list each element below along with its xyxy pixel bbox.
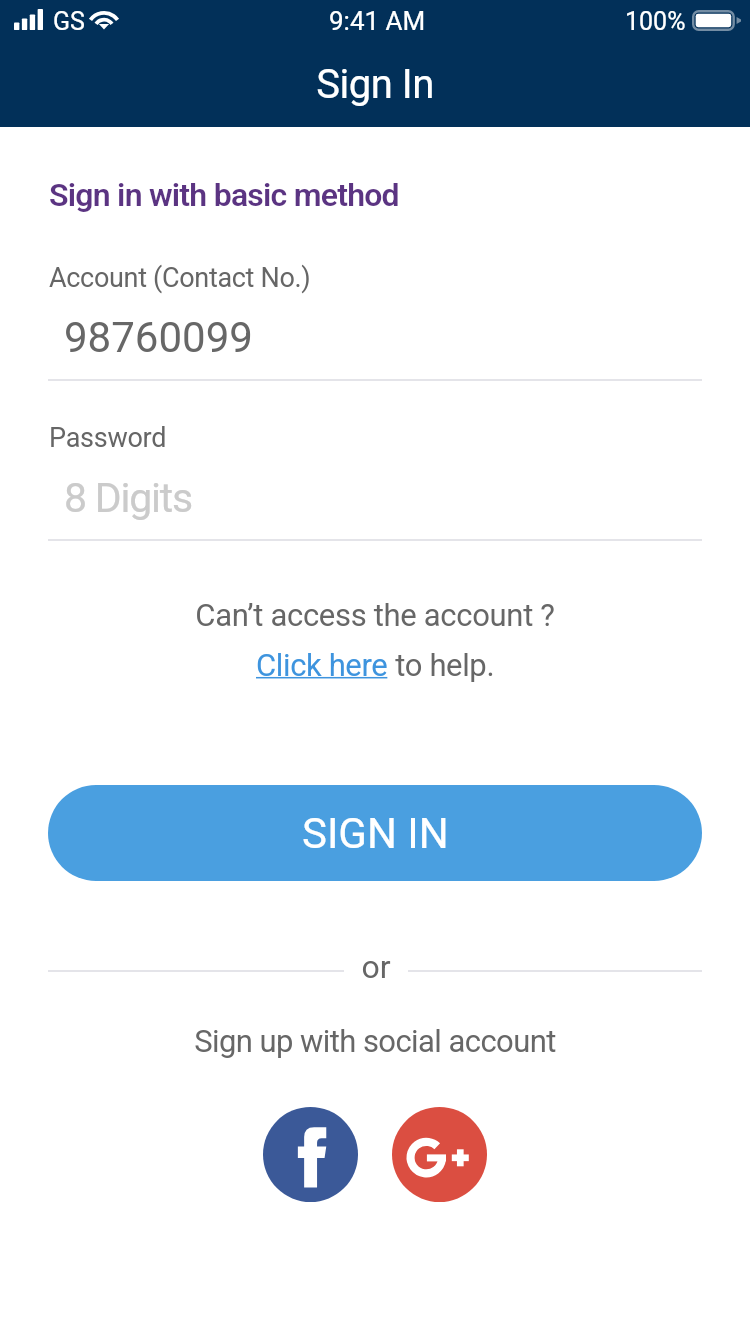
button[interactable]: Click here <box>256 647 388 683</box>
staticText: Sign In <box>0 61 750 108</box>
staticText: Can’t access the account ? <box>0 597 750 633</box>
button[interactable]: Sign up with Facebook <box>263 1107 358 1202</box>
staticText: Account (Contact No.) <box>49 262 311 294</box>
button[interactable]: Password <box>48 415 702 541</box>
staticText: 100% <box>625 7 686 36</box>
staticText: GS <box>53 7 85 36</box>
staticText: 98760099 <box>64 313 253 362</box>
staticText: 8 Digits <box>64 474 192 522</box>
staticText: 9:41 AM <box>329 6 426 36</box>
button[interactable]: SIGN IN <box>48 785 702 881</box>
staticText: Password <box>49 422 167 454</box>
staticText: Sign up with social account <box>0 1023 750 1059</box>
staticText: or <box>344 948 408 986</box>
button[interactable]: Sign up with Google Plus <box>392 1107 487 1202</box>
button[interactable]: Account (Contact No.) <box>48 255 702 381</box>
staticText: SIGN IN <box>302 809 449 858</box>
staticText: to help. <box>388 647 495 683</box>
staticText: Sign in with basic method <box>49 176 399 214</box>
